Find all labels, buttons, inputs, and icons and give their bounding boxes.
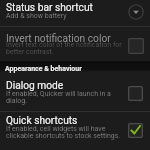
button[interactable]: Disabled — [128, 86, 143, 101]
staticText: If enabled, Quicker will launch in a dia… — [6, 90, 128, 105]
button[interactable]: Pick colour — [128, 38, 144, 54]
staticText: If enabled, cell widgets will have click… — [6, 125, 128, 140]
button[interactable]: Status bar shortcut — [0, 0, 150, 26]
staticText: Status bar shortcut — [6, 2, 126, 14]
button[interactable]: Expand options — [128, 4, 144, 20]
staticText: Quick shortcuts — [6, 115, 126, 127]
button[interactable]: Enabled — [128, 123, 143, 138]
staticText: Add & show battery — [6, 12, 128, 20]
button[interactable]: Dialog mode — [0, 72, 150, 111]
staticText: Invert notification color — [6, 33, 126, 45]
button[interactable]: Invert notification color — [0, 27, 150, 61]
staticText: Dialog mode — [6, 80, 126, 92]
button[interactable]: Quick shortcuts — [0, 112, 150, 146]
staticText: Appearance & behaviour — [5, 65, 82, 73]
staticText: Invert text color of the notification fo… — [6, 41, 128, 56]
